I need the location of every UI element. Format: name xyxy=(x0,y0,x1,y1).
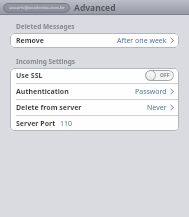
staticText: Authentication xyxy=(16,87,69,97)
staticText: usuario@academia.com.br xyxy=(9,5,65,11)
button[interactable]: Use SSL, off xyxy=(145,70,174,81)
staticText: Delete from server xyxy=(16,103,82,113)
staticText: Never xyxy=(147,103,167,113)
staticText: Incoming Settings xyxy=(16,57,76,66)
staticText: After one week xyxy=(117,36,167,46)
button[interactable]: usuario@academia.com.br xyxy=(3,3,70,13)
button[interactable]: Remove xyxy=(10,33,179,48)
button[interactable]: Delete from server xyxy=(10,100,179,115)
staticText: Deleted Messages xyxy=(16,22,75,31)
button[interactable]: Use SSL xyxy=(10,68,179,83)
staticText: Server Port xyxy=(16,119,56,129)
staticText: Password xyxy=(135,87,167,97)
staticText: Use SSL xyxy=(16,71,43,81)
button[interactable]: Server Port xyxy=(10,116,179,131)
staticText: Advanced xyxy=(74,2,116,14)
staticText: Remove xyxy=(16,36,45,46)
button[interactable]: Authentication xyxy=(10,84,179,99)
staticText: 110 xyxy=(60,119,73,129)
staticText: OFF xyxy=(160,72,170,79)
